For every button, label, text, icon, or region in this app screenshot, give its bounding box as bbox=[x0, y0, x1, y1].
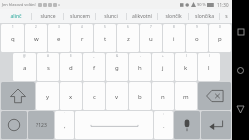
button[interactable]: Voice input bbox=[174, 111, 200, 139]
staticText: m bbox=[183, 93, 189, 101]
staticText: c bbox=[93, 93, 96, 101]
button[interactable]: 3 bbox=[48, 24, 70, 52]
button[interactable]: 0 bbox=[209, 24, 231, 52]
button[interactable]: c bbox=[83, 82, 105, 110]
staticText: slončík bbox=[165, 13, 182, 20]
button[interactable]: n bbox=[152, 82, 174, 110]
staticText: ?123 bbox=[36, 122, 47, 129]
button[interactable]: sluncem bbox=[64, 9, 95, 23]
staticText: . bbox=[163, 122, 165, 130]
button[interactable]: @ bbox=[13, 53, 36, 81]
button[interactable]: + bbox=[152, 53, 174, 81]
staticText: - bbox=[140, 54, 141, 58]
staticText: @ bbox=[23, 54, 26, 58]
staticText: b bbox=[138, 93, 142, 101]
button[interactable]: ) bbox=[198, 53, 220, 81]
button[interactable]: $ bbox=[60, 53, 82, 81]
staticText: 7 bbox=[150, 25, 152, 29]
button[interactable]: # bbox=[37, 53, 59, 81]
button[interactable]: alinč bbox=[0, 9, 31, 23]
staticText: slunci bbox=[104, 13, 118, 20]
staticText: l bbox=[208, 64, 210, 72]
button[interactable]: ˙ bbox=[55, 111, 74, 139]
button[interactable]: Recent apps bbox=[232, 23, 249, 40]
staticText: ) bbox=[209, 54, 210, 58]
button[interactable]: alikvotní bbox=[127, 9, 157, 23]
button[interactable]: m bbox=[175, 82, 197, 110]
staticText: v bbox=[115, 93, 119, 101]
staticText: 0 bbox=[219, 25, 221, 29]
staticText: Jen hlasová volání bbox=[2, 2, 36, 7]
staticText: s bbox=[225, 13, 228, 20]
button[interactable]: 4 bbox=[71, 24, 93, 52]
staticText: $ bbox=[70, 54, 72, 58]
staticText: x bbox=[69, 93, 73, 101]
staticText: sluncem bbox=[70, 13, 90, 20]
staticText: e bbox=[57, 35, 61, 43]
staticText: q bbox=[11, 35, 15, 43]
staticText: a bbox=[23, 64, 27, 72]
staticText: f bbox=[93, 64, 96, 72]
button[interactable]: Space bbox=[75, 111, 153, 139]
staticText: _ bbox=[93, 54, 95, 58]
staticText: n bbox=[161, 93, 165, 101]
staticText: alinč bbox=[10, 13, 22, 20]
staticText: s bbox=[47, 64, 50, 72]
button[interactable]: & bbox=[106, 53, 128, 81]
staticText: w bbox=[34, 35, 39, 43]
button[interactable]: Change language bbox=[1, 111, 27, 139]
button[interactable]: 1 bbox=[1, 24, 24, 52]
button[interactable]: b bbox=[129, 82, 151, 110]
staticText: » bbox=[58, 2, 61, 7]
button[interactable]: ( bbox=[175, 53, 197, 81]
staticText: 11:30 bbox=[217, 2, 229, 8]
staticText: alikvotní bbox=[132, 13, 152, 20]
button[interactable]: 7 bbox=[140, 24, 162, 52]
button[interactable]: Enter bbox=[201, 111, 231, 139]
staticText: r bbox=[81, 35, 84, 43]
staticText: ˙ bbox=[64, 112, 65, 116]
button[interactable]: slunce bbox=[32, 9, 63, 23]
button[interactable]: ?123 bbox=[28, 111, 54, 139]
button[interactable]: v bbox=[106, 82, 128, 110]
button[interactable]: slončík bbox=[158, 9, 188, 23]
staticText: k bbox=[184, 64, 188, 72]
staticText: g bbox=[115, 64, 119, 72]
button[interactable]: - bbox=[129, 53, 151, 81]
button[interactable]: Shift bbox=[1, 82, 35, 110]
button[interactable]: Back bbox=[232, 101, 249, 118]
staticText: slunce bbox=[40, 13, 56, 20]
button[interactable]: 9 bbox=[186, 24, 208, 52]
button[interactable]: y bbox=[36, 82, 59, 110]
staticText: 4 bbox=[81, 25, 83, 29]
button[interactable]: 8 bbox=[163, 24, 185, 52]
staticText: u bbox=[149, 35, 153, 43]
staticText: 9 bbox=[196, 25, 198, 29]
staticText: : bbox=[163, 112, 164, 116]
staticText: t bbox=[104, 35, 107, 43]
button[interactable]: 6 bbox=[117, 24, 139, 52]
button[interactable]: x bbox=[60, 82, 82, 110]
staticText: j bbox=[162, 64, 164, 72]
button[interactable]: slunci bbox=[96, 9, 126, 23]
staticText: h bbox=[138, 64, 142, 72]
button[interactable]: Home bbox=[232, 62, 249, 79]
staticText: 6 bbox=[127, 25, 129, 29]
staticText: 5 bbox=[104, 25, 106, 29]
staticText: y bbox=[46, 93, 50, 101]
staticText: ( bbox=[186, 54, 187, 58]
button[interactable]: slončíka bbox=[189, 9, 219, 23]
staticText: # bbox=[47, 54, 49, 58]
staticText: z bbox=[127, 35, 130, 43]
button[interactable]: 5 bbox=[94, 24, 116, 52]
staticText: + bbox=[162, 54, 164, 58]
button[interactable]: s bbox=[220, 9, 232, 23]
button[interactable]: 2 bbox=[25, 24, 47, 52]
staticText: 2 bbox=[35, 25, 37, 29]
staticText: p bbox=[218, 35, 222, 43]
staticText: & bbox=[116, 54, 119, 58]
button[interactable]: Backspace bbox=[198, 82, 231, 110]
button[interactable]: _ bbox=[83, 53, 105, 81]
staticText: 90 % bbox=[197, 2, 206, 7]
